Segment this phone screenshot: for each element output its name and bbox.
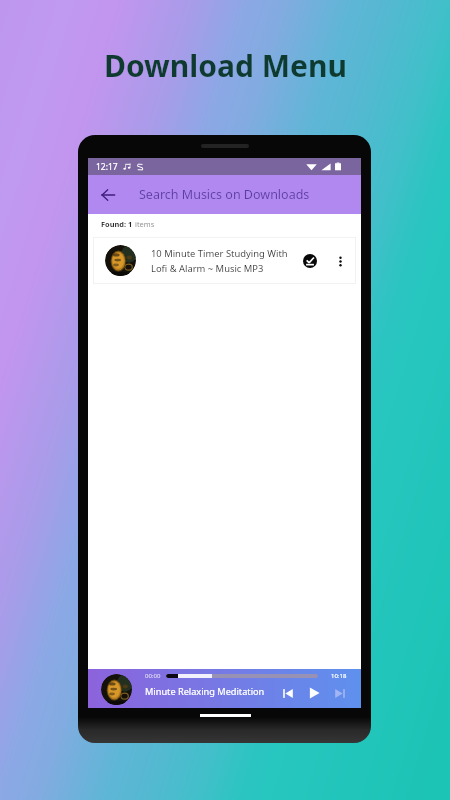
button[interactable]: Play [303,682,325,704]
button[interactable]: 10 Minute Timer Studying With [94,238,355,283]
staticText: 12:17 [96,161,118,173]
staticText: Minute Relaxing Meditation [145,685,265,698]
staticText: 10:18 [331,672,347,680]
staticText: Found: 1 [101,219,135,229]
button[interactable]: Downloaded [300,251,320,271]
staticText: 10 Minute Timer Studying With [151,247,288,260]
staticText: Search Musics on Downloads [139,186,310,203]
staticText: 00:00 [145,672,161,680]
button[interactable]: More options [330,251,350,271]
staticText: items [135,219,155,229]
button[interactable]: Back [88,175,128,214]
button[interactable]: Previous [278,683,298,703]
staticText: Lofi & Alarm ~ Music MP3 [151,262,264,275]
button[interactable]: Next [330,683,350,703]
staticText: Download Menu [104,45,347,86]
